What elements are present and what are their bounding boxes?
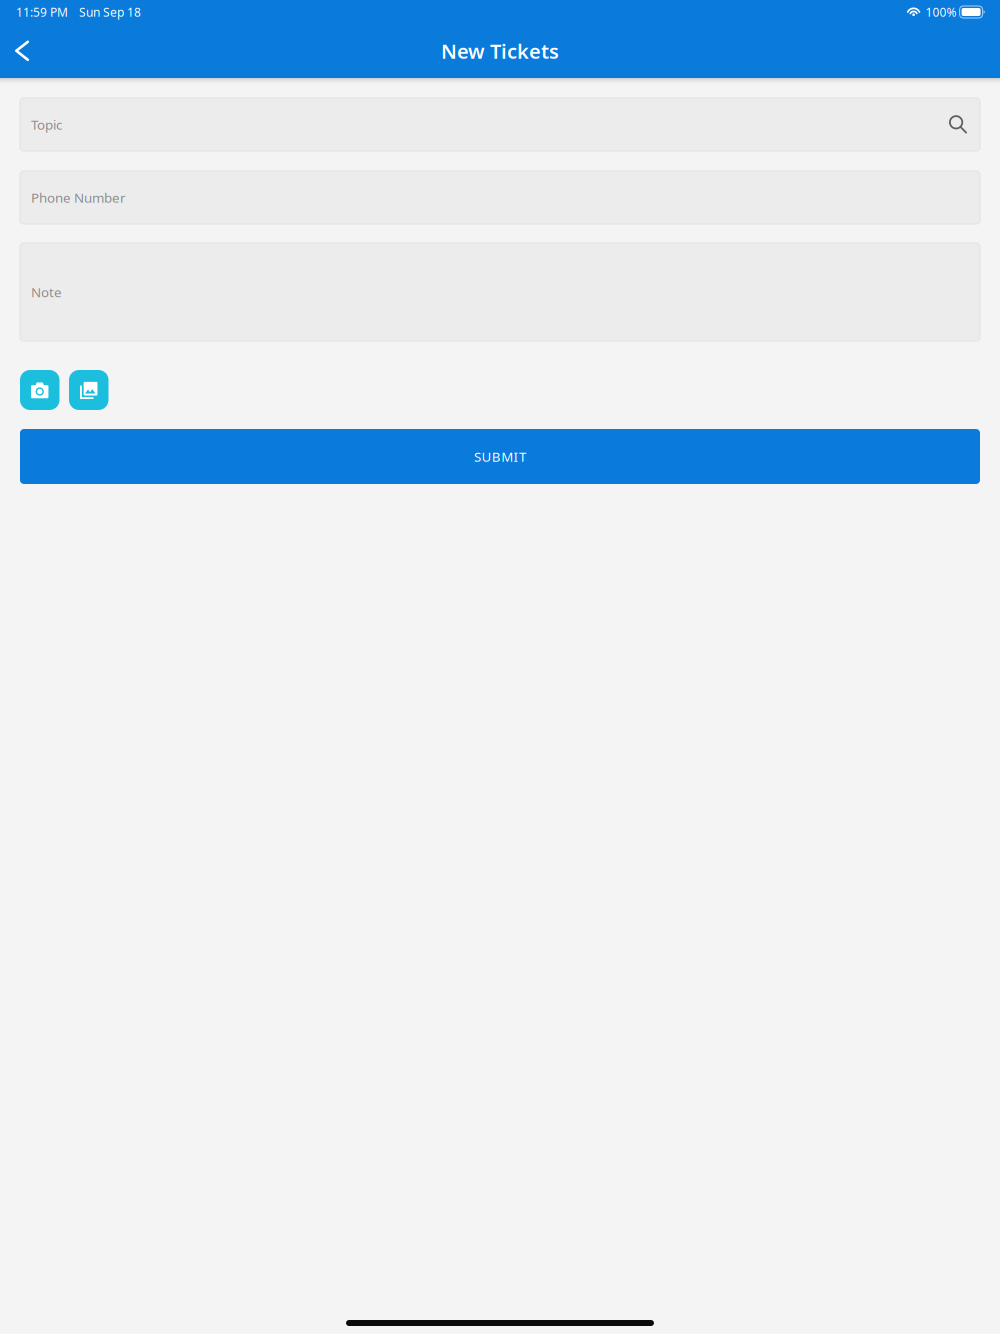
button[interactable]: Take photo bbox=[20, 370, 59, 410]
staticText: Sun Sep 18 bbox=[79, 4, 141, 20]
staticText: 11:59 PM bbox=[16, 4, 68, 20]
staticText: Note bbox=[31, 283, 62, 301]
staticText: Phone Number bbox=[31, 189, 126, 206]
staticText: New Tickets bbox=[441, 38, 559, 64]
button[interactable]: Search bbox=[941, 107, 975, 141]
staticText: Topic bbox=[31, 116, 62, 133]
button[interactable]: Choose from library bbox=[69, 370, 108, 410]
button[interactable]: SUBMIT bbox=[20, 429, 980, 484]
button[interactable]: Back bbox=[0, 25, 42, 76]
staticText: SUBMIT bbox=[474, 448, 526, 465]
staticText: 100% bbox=[926, 4, 957, 20]
button[interactable]: Topic bbox=[0, 98, 1000, 151]
button[interactable]: Phone Number bbox=[0, 171, 1000, 224]
